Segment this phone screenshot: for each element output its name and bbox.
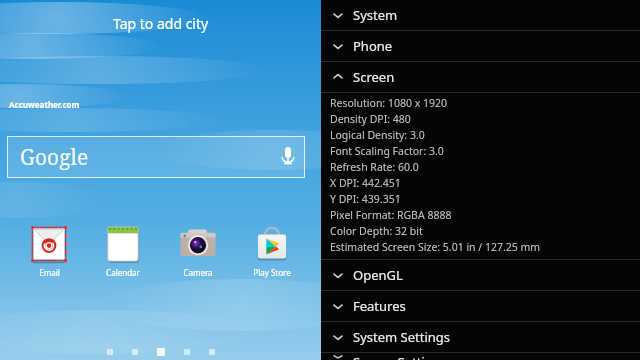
staticText: Y DPI: 439.351 bbox=[330, 192, 401, 206]
button[interactable]: Play Store bbox=[241, 224, 303, 278]
staticText: Features bbox=[353, 297, 406, 315]
button[interactable]: Expand bbox=[321, 291, 640, 321]
staticText: Refresh Rate: 60.0 bbox=[330, 160, 419, 174]
staticText: Density DPI: 480 bbox=[330, 112, 411, 126]
staticText: Logical Density: 3.0 bbox=[330, 128, 425, 142]
staticText: Accuweather.com bbox=[9, 99, 80, 110]
other: Collapse bbox=[332, 71, 344, 83]
staticText: Tap to add city bbox=[113, 14, 209, 33]
button[interactable]: Expand bbox=[321, 0, 640, 30]
other: Expand bbox=[332, 9, 344, 21]
staticText: Pixel Format: RGBA 8888 bbox=[330, 208, 452, 222]
staticText: Secure Settings bbox=[353, 353, 448, 360]
staticText: Resolution: 1080 x 1920 bbox=[330, 96, 447, 110]
staticText: Color Depth: 32 bit bbox=[330, 224, 423, 238]
button[interactable]: Expand bbox=[321, 260, 640, 290]
staticText: OpenGL bbox=[353, 266, 403, 284]
button[interactable]: Expand bbox=[321, 353, 640, 360]
staticText: System bbox=[353, 6, 398, 24]
staticText: System Settings bbox=[353, 328, 451, 346]
other: Expand bbox=[332, 269, 344, 281]
staticText: Play Store bbox=[253, 267, 291, 278]
button[interactable]: Calendar bbox=[92, 224, 154, 278]
button[interactable]: Collapse bbox=[321, 62, 640, 92]
staticText: Phone bbox=[353, 37, 393, 55]
button[interactable]: Expand bbox=[321, 31, 640, 61]
staticText: Email bbox=[39, 267, 60, 278]
staticText: Font Scaling Factor: 3.0 bbox=[330, 144, 444, 158]
button[interactable]: Tap to add city bbox=[0, 0, 321, 46]
other: Expand bbox=[332, 40, 344, 52]
other: Voice search bbox=[281, 146, 295, 168]
button[interactable]: Email bbox=[18, 224, 80, 278]
staticText: Google bbox=[20, 143, 89, 172]
staticText: Screen bbox=[353, 68, 395, 86]
staticText: X DPI: 442.451 bbox=[330, 176, 401, 190]
other: Expand bbox=[332, 353, 344, 360]
staticText: Camera bbox=[183, 267, 213, 278]
button[interactable]: Expand bbox=[321, 322, 640, 352]
button[interactable]: Google bbox=[7, 136, 305, 178]
staticText: Calendar bbox=[106, 267, 140, 278]
staticText: Estimated Screen Size: 5.01 in / 127.25 … bbox=[330, 240, 541, 254]
other: Expand bbox=[332, 331, 344, 343]
other: Expand bbox=[332, 300, 344, 312]
button[interactable]: Camera bbox=[167, 224, 229, 278]
